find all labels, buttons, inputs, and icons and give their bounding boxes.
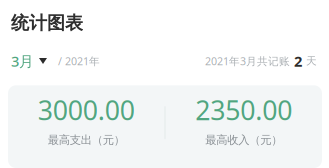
staticText: 统计图表 [11,12,83,34]
staticText: 2350.00 [195,92,292,128]
staticText: 最高收入（元） [205,133,282,147]
button[interactable]: 3月 [11,51,58,71]
button[interactable]: 3000.00 [8,92,164,147]
staticText: 2 [290,51,306,71]
staticText: 天 [306,54,317,67]
button[interactable]: 2350.00 [165,92,322,147]
staticText: 3月 [11,51,34,71]
staticText: 3000.00 [38,92,135,128]
staticText: 最高支出（元） [48,133,125,147]
staticText: / 2021年 [58,54,100,68]
staticText: 2021年3月共记账 [205,54,290,68]
